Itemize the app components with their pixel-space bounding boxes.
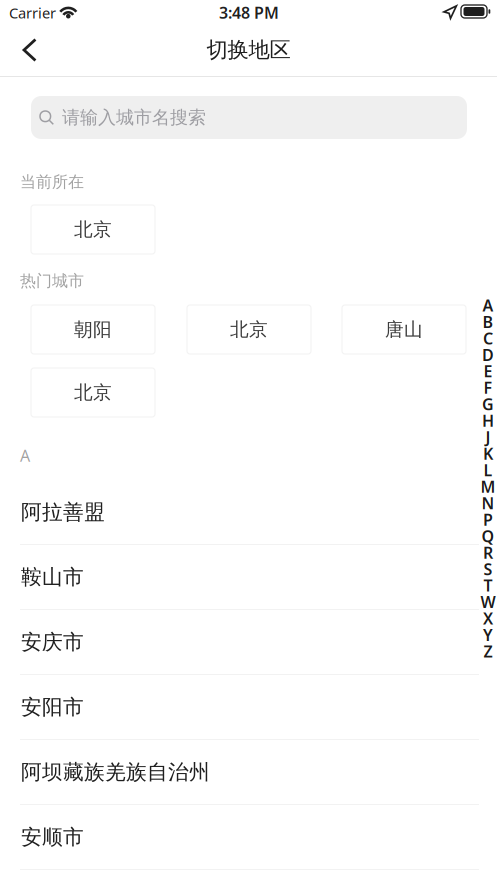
button[interactable]: 安庆市	[0, 610, 497, 674]
staticText: A	[20, 445, 30, 466]
staticText: 3:48 PM	[219, 2, 279, 23]
staticText: D	[482, 344, 494, 365]
button[interactable]: 安阳市	[0, 675, 497, 739]
staticText: 唐山	[385, 318, 423, 341]
button[interactable]: 阿拉善盟	[0, 480, 497, 544]
button[interactable]: 安顺市	[0, 805, 497, 869]
staticText: G	[482, 393, 494, 415]
button[interactable]: Q	[479, 528, 497, 544]
staticText: 安庆市	[21, 629, 84, 655]
staticText: X	[483, 608, 493, 629]
button[interactable]: 北京	[187, 305, 311, 354]
staticText: H	[482, 410, 494, 431]
staticText: 北京	[74, 218, 112, 241]
button[interactable]: E	[479, 363, 497, 379]
button[interactable]: N	[479, 495, 497, 511]
button[interactable]: S	[479, 561, 497, 577]
button[interactable]: A	[479, 297, 497, 313]
staticText: 阿坝藏族羌族自治州	[21, 759, 210, 785]
button[interactable]: L	[479, 462, 497, 478]
staticText: 热门城市	[20, 271, 84, 291]
staticText: W	[480, 591, 495, 612]
button[interactable]: F	[479, 379, 497, 396]
staticText: Carrier	[9, 3, 56, 22]
staticText: B	[482, 311, 493, 332]
staticText: M	[480, 476, 495, 497]
staticText: A	[482, 295, 493, 316]
staticText: Y	[483, 624, 493, 645]
staticText: L	[483, 459, 492, 481]
staticText: T	[483, 575, 492, 596]
button[interactable]: 阿坝藏族羌族自治州	[0, 740, 497, 804]
button[interactable]: C	[479, 330, 497, 346]
staticText: C	[483, 328, 493, 349]
staticText: 朝阳	[74, 318, 112, 341]
staticText: 鞍山市	[21, 564, 84, 590]
staticText: F	[483, 377, 492, 398]
staticText: 请输入城市名搜索	[62, 106, 206, 129]
button[interactable]: 请输入城市名搜索	[31, 96, 467, 139]
button[interactable]: 北京	[31, 205, 155, 254]
staticText: 当前所在	[20, 172, 84, 192]
staticText: S	[483, 558, 492, 579]
staticText: 阿拉善盟	[21, 499, 105, 525]
staticText: 北京	[74, 381, 112, 404]
button[interactable]: 北京	[31, 368, 155, 417]
button[interactable]: 朝阳	[31, 305, 155, 354]
staticText: E	[483, 360, 492, 382]
button[interactable]: Y	[479, 627, 497, 643]
button[interactable]: B	[479, 313, 497, 330]
button[interactable]: P	[479, 511, 497, 528]
staticText: J	[485, 426, 490, 448]
button[interactable]: Back	[8, 28, 52, 72]
button[interactable]: D	[479, 346, 497, 363]
staticText: Z	[483, 641, 492, 662]
staticText: 切换地区	[206, 37, 290, 63]
button[interactable]: 鞍山市	[0, 545, 497, 609]
staticText: P	[483, 509, 493, 530]
staticText: N	[481, 492, 494, 514]
button[interactable]: R	[479, 544, 497, 561]
button[interactable]: H	[479, 412, 497, 429]
button[interactable]: J	[479, 429, 497, 445]
button[interactable]: Z	[479, 643, 497, 660]
staticText: 安阳市	[21, 694, 84, 720]
button[interactable]: M	[479, 478, 497, 495]
button[interactable]: 唐山	[342, 305, 466, 354]
staticText: K	[483, 443, 493, 464]
button[interactable]: K	[479, 445, 497, 462]
button[interactable]: G	[479, 396, 497, 412]
button[interactable]: X	[479, 610, 497, 627]
staticText: R	[483, 542, 493, 563]
staticText: 安顺市	[21, 824, 84, 850]
staticText: Q	[481, 525, 494, 546]
button[interactable]: W	[479, 594, 497, 610]
staticText: 北京	[230, 318, 268, 341]
button[interactable]: T	[479, 577, 497, 594]
